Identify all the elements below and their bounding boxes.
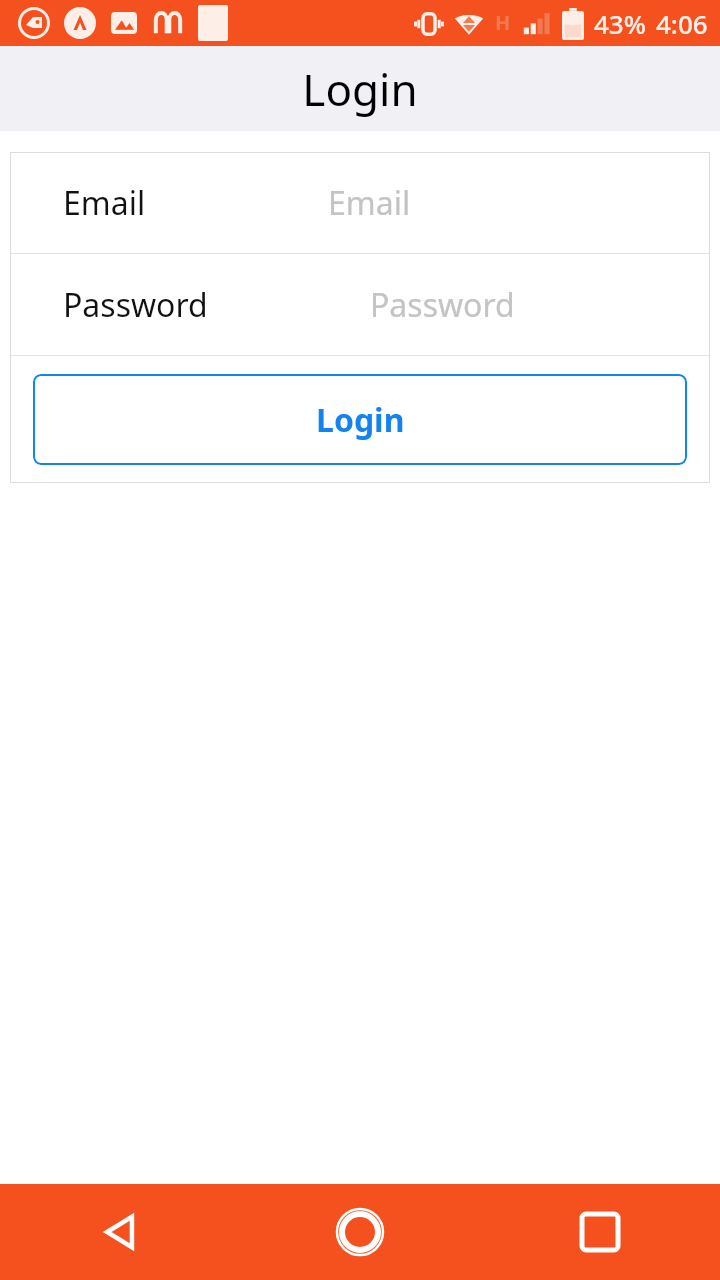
staticText: Email: [63, 181, 146, 225]
staticText: Email: [328, 181, 411, 225]
button[interactable]: Email: [10, 152, 710, 253]
staticText: Password: [63, 283, 208, 327]
staticText: Password: [370, 283, 515, 327]
staticText: 43%: [594, 6, 646, 41]
button[interactable]: Back: [0, 1184, 240, 1280]
staticText: 4:06: [656, 6, 708, 41]
button[interactable]: Home: [240, 1184, 480, 1280]
button[interactable]: Recent apps: [480, 1184, 720, 1280]
staticText: Login: [316, 398, 405, 442]
staticText: Login: [302, 59, 418, 119]
button[interactable]: Login: [33, 374, 687, 465]
staticText: H: [495, 9, 511, 36]
button[interactable]: Password: [10, 254, 710, 355]
